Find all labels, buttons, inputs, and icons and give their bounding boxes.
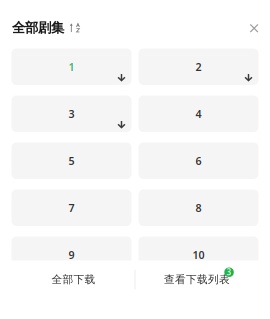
staticText: 3 (227, 267, 232, 277)
staticText: 1 (68, 60, 74, 74)
button[interactable]: 查看下载列表 (134, 260, 270, 298)
staticText: 8 (195, 201, 201, 215)
button[interactable]: 8 (138, 189, 258, 226)
staticText: 5 (68, 154, 74, 168)
button[interactable]: 全部下载 (0, 260, 134, 298)
button[interactable]: 3 (11, 95, 131, 132)
button[interactable]: 5 (11, 142, 131, 179)
button[interactable]: 2 (138, 48, 258, 85)
button[interactable]: 4 (138, 95, 258, 132)
staticText: 2 (195, 60, 201, 74)
staticText: 查看下载列表 (164, 273, 230, 286)
staticText: 4 (195, 107, 201, 121)
button[interactable]: 1 (11, 48, 131, 85)
button[interactable]: 7 (11, 189, 131, 226)
staticText: 全部下载 (51, 273, 95, 286)
staticText: 7 (68, 201, 74, 215)
staticText: 6 (195, 154, 201, 168)
button[interactable]: 10 (138, 236, 258, 273)
staticText: 10 (192, 248, 204, 262)
button[interactable]: 9 (11, 236, 131, 273)
button[interactable]: 全部剧集, change sort order (12, 10, 80, 39)
staticText: 全部剧集 (12, 20, 64, 36)
button[interactable]: 6 (138, 142, 258, 179)
staticText: 9 (68, 248, 74, 262)
button[interactable]: Close (244, 13, 264, 36)
staticText: 3 (68, 107, 74, 121)
